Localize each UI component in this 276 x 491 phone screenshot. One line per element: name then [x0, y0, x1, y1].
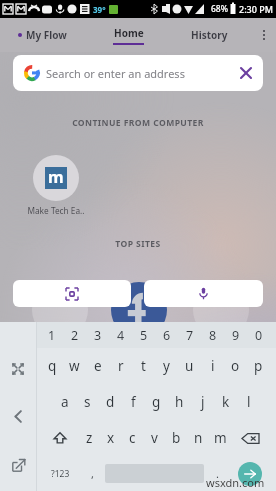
button[interactable]: a	[53, 384, 76, 420]
staticText: x	[107, 429, 115, 447]
button[interactable]: 4	[109, 322, 132, 348]
button[interactable]: p	[247, 348, 270, 384]
button[interactable]: i	[201, 348, 224, 384]
button[interactable]: 5	[132, 322, 155, 348]
button[interactable]: q	[41, 348, 63, 384]
button[interactable]: o	[224, 348, 247, 384]
button[interactable]: l	[237, 384, 260, 420]
button[interactable]: 9	[224, 322, 247, 348]
staticText: k	[222, 393, 230, 411]
button[interactable]: f	[122, 384, 145, 420]
button[interactable]: 8	[201, 322, 224, 348]
staticText: My Flow	[26, 28, 67, 42]
staticText: t	[141, 357, 146, 375]
button[interactable]: Voice search	[144, 280, 263, 307]
button[interactable]: ,	[79, 456, 105, 491]
staticText: History	[191, 28, 228, 42]
button[interactable]: u	[178, 348, 201, 384]
staticText: c	[129, 429, 136, 447]
staticText: f	[131, 393, 136, 411]
staticText: g	[152, 393, 161, 411]
button[interactable]: t	[132, 348, 155, 384]
staticText: n	[194, 429, 203, 447]
staticText: 0	[255, 327, 263, 344]
button[interactable]: History	[184, 18, 234, 52]
staticText: e	[94, 357, 102, 375]
staticText: 8	[209, 327, 217, 344]
button[interactable]: w	[63, 348, 86, 384]
staticText: w	[69, 357, 80, 375]
staticText: s	[84, 393, 91, 411]
button[interactable]: r	[109, 348, 132, 384]
button[interactable]: Fullscreen	[5, 356, 31, 382]
button[interactable]: Backspace	[231, 420, 270, 456]
staticText: v	[151, 429, 158, 447]
staticText: r	[118, 357, 124, 375]
staticText: ,	[91, 466, 94, 481]
button[interactable]: 3	[86, 322, 109, 348]
staticText: 7	[186, 327, 194, 344]
staticText: 4	[117, 327, 125, 344]
button[interactable]: g	[145, 384, 168, 420]
staticText: z	[86, 429, 93, 447]
staticText: 2:30 PM	[239, 3, 273, 15]
button[interactable]: Back	[5, 403, 31, 429]
staticText: 9	[232, 327, 240, 344]
staticText: p	[254, 357, 263, 375]
staticText: d	[106, 393, 115, 411]
staticText: 39°	[93, 4, 106, 15]
button[interactable]: Open in new window	[5, 452, 31, 478]
staticText: Home	[114, 26, 144, 40]
staticText: wsxdn.com	[206, 475, 265, 490]
button[interactable]: n	[187, 420, 209, 456]
button[interactable]: v	[143, 420, 165, 456]
staticText: m	[214, 429, 227, 447]
staticText: y	[163, 357, 170, 375]
button[interactable]: x	[100, 420, 121, 456]
button[interactable]: c	[121, 420, 143, 456]
staticText: u	[185, 357, 194, 375]
button[interactable]: j	[191, 384, 214, 420]
button[interactable]: k	[214, 384, 237, 420]
button[interactable]: z	[79, 420, 100, 456]
button[interactable]: Go	[230, 456, 270, 491]
button[interactable]: 7	[178, 322, 201, 348]
staticText: m	[48, 166, 64, 188]
button[interactable]: More options	[252, 18, 276, 52]
staticText: 2	[71, 327, 79, 344]
button[interactable]: s	[76, 384, 99, 420]
button[interactable]: Search or enter an address	[13, 55, 263, 91]
staticText: 6	[163, 327, 171, 344]
button[interactable]: m	[209, 420, 231, 456]
staticText: o	[231, 357, 240, 375]
staticText: h	[175, 393, 184, 411]
button[interactable]: b	[165, 420, 187, 456]
button[interactable]: 2	[63, 322, 86, 348]
staticText: 1	[48, 327, 56, 344]
button[interactable]: y	[155, 348, 178, 384]
button[interactable]: Facebook	[111, 282, 167, 338]
other: Clear	[240, 67, 252, 79]
staticText: a	[61, 393, 69, 411]
staticText: j	[201, 393, 205, 411]
button[interactable]: Home	[105, 18, 151, 52]
staticText: Make Tech Ea..	[22, 205, 90, 216]
button[interactable]: d	[99, 384, 122, 420]
button[interactable]: Scan QR code	[13, 280, 131, 307]
button[interactable]: ?123	[41, 456, 79, 491]
button[interactable]: 6	[155, 322, 178, 348]
button[interactable]: e	[86, 348, 109, 384]
button[interactable]: Shift	[41, 420, 79, 456]
staticText: TOP SITES	[0, 238, 276, 250]
button[interactable]: My Flow	[18, 18, 67, 52]
button[interactable]: 0	[247, 322, 270, 348]
button[interactable]: .	[204, 456, 230, 491]
staticText: 5	[140, 327, 148, 344]
button[interactable]: 1	[41, 322, 63, 348]
staticText: .	[216, 466, 219, 481]
button[interactable]: h	[168, 384, 191, 420]
staticText: Search or enter an address	[46, 66, 185, 81]
staticText: q	[48, 357, 57, 375]
button[interactable]: m	[33, 155, 79, 201]
